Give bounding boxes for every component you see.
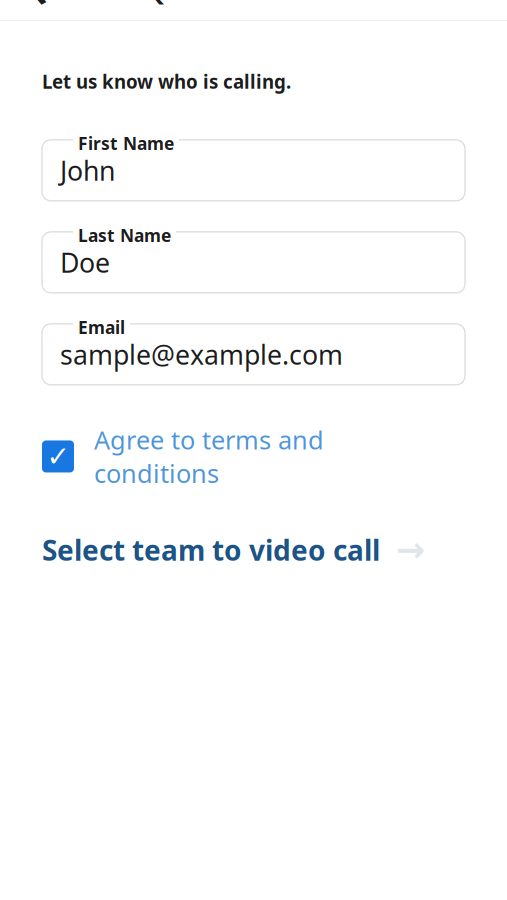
staticText: sample@example.com xyxy=(60,337,343,372)
staticText: Quick Video Call xyxy=(144,0,363,8)
staticText: Let us know who is calling. xyxy=(42,69,291,94)
staticText: First Name xyxy=(78,132,174,155)
staticText: John xyxy=(60,153,115,188)
button[interactable]: ✓ xyxy=(42,423,465,490)
staticText: Select team to video call xyxy=(42,531,380,568)
staticText: Doe xyxy=(60,245,110,280)
button[interactable]: Select team to video call xyxy=(42,530,465,569)
staticText: Last Name xyxy=(78,224,171,247)
staticText: Email xyxy=(78,316,125,339)
staticText: Agree to terms and conditions xyxy=(94,423,324,490)
staticText: → xyxy=(396,530,425,569)
button[interactable]: Back xyxy=(18,0,62,11)
staticText: ✓ xyxy=(46,441,69,472)
staticText: ‹ xyxy=(31,0,48,19)
